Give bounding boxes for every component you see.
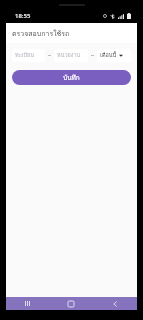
button[interactable]: ทะเบียน: [12, 49, 45, 62]
staticText: ตรวจสอบการใช้รถ: [12, 28, 70, 39]
button[interactable]: บันทึก: [12, 70, 131, 85]
staticText: 18:55: [15, 12, 31, 20]
staticText: บันทึก: [63, 73, 80, 83]
staticText: หน่วยงาน: [57, 51, 81, 60]
button[interactable]: เดือนนี้: [97, 49, 131, 62]
button[interactable]: Back: [93, 297, 137, 310]
button[interactable]: Recent apps: [6, 297, 49, 310]
button[interactable]: หน่วยงาน: [54, 49, 88, 62]
button[interactable]: Home: [49, 297, 93, 310]
staticText: ทะเบียน: [15, 51, 34, 60]
staticText: เดือนนี้: [100, 51, 117, 60]
